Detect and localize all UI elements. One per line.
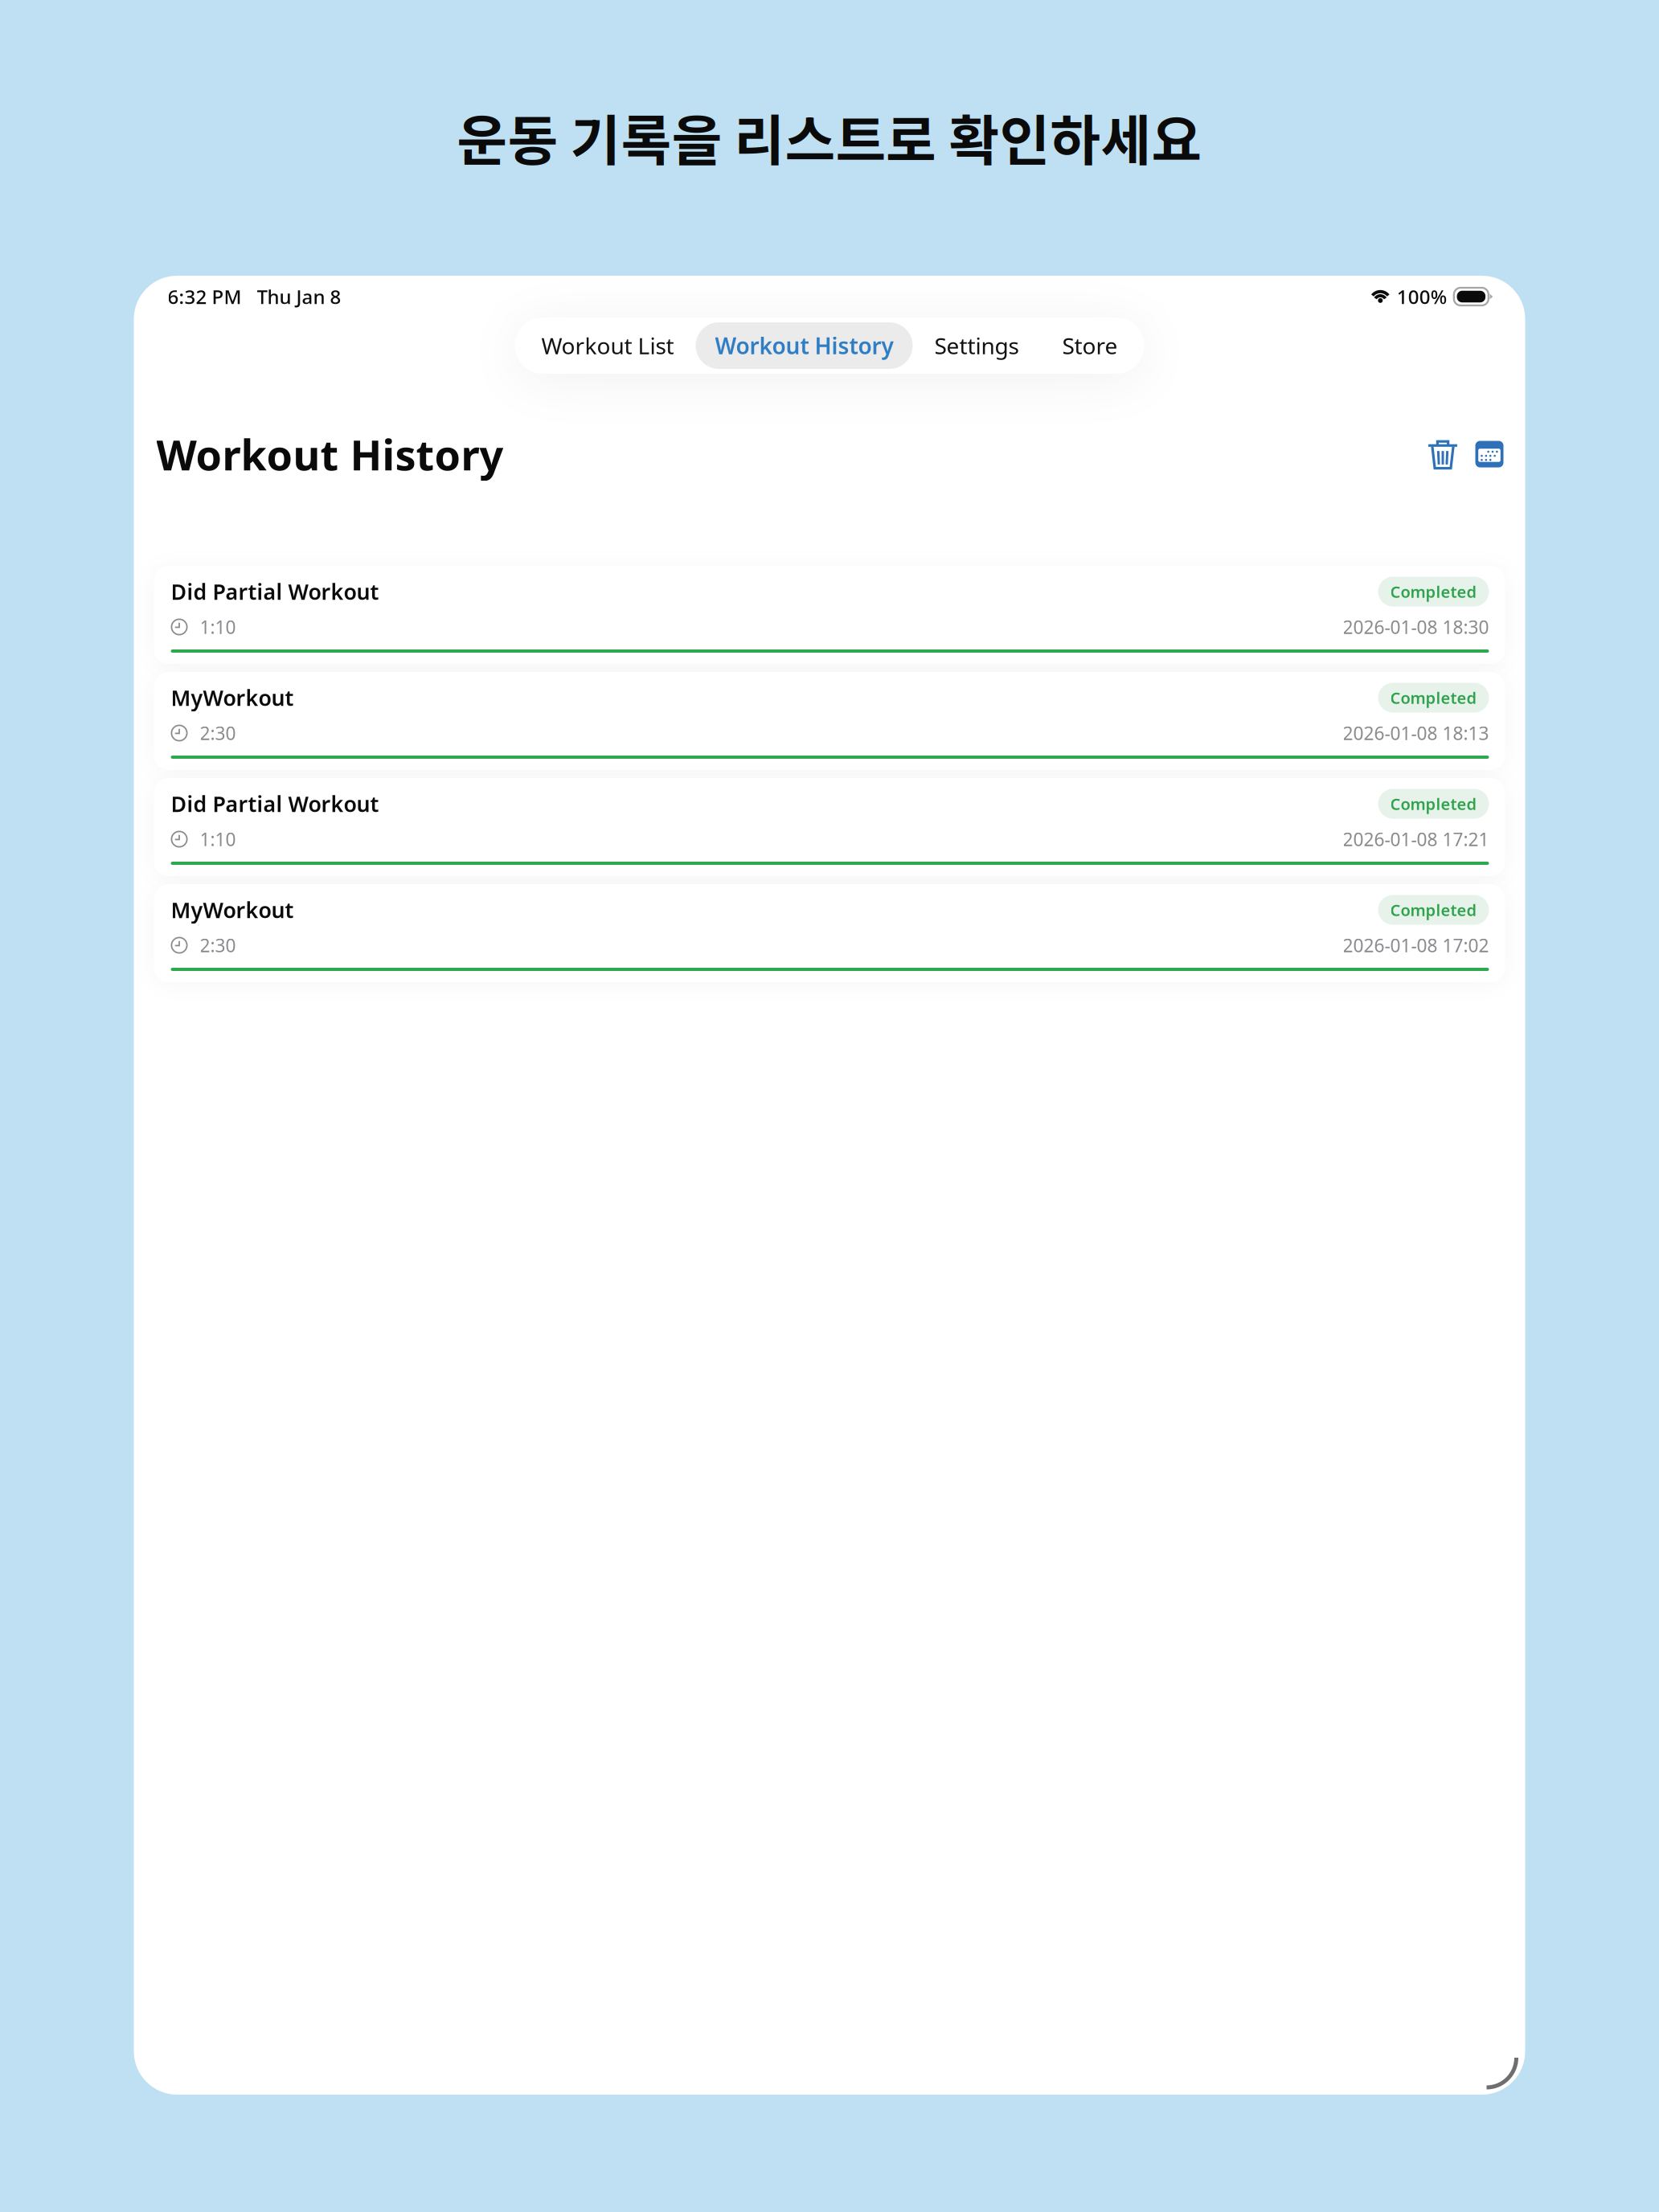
staticText: 2026-01-08 17:21 [1343, 827, 1489, 851]
staticText: 1:10 [200, 615, 236, 639]
staticText: 2026-01-08 18:30 [1343, 615, 1489, 639]
staticText: 2:30 [200, 721, 236, 745]
staticText: Completed [1390, 793, 1477, 814]
button[interactable]: MyWorkout [154, 672, 1505, 770]
button[interactable]: Settings [913, 322, 1040, 369]
staticText: Did Partial Workout [171, 790, 379, 818]
staticText: Workout History [715, 331, 893, 361]
button[interactable]: Did Partial Workout [154, 566, 1505, 664]
staticText: Completed [1390, 581, 1477, 602]
staticText: Settings [934, 331, 1019, 361]
staticText: 1:10 [200, 827, 236, 851]
staticText: Workout List [541, 331, 674, 361]
staticText: 2026-01-08 18:13 [1343, 721, 1489, 745]
button[interactable]: MyWorkout [154, 884, 1505, 982]
button[interactable]: Workout History [696, 322, 913, 369]
button[interactable]: Workout List [520, 322, 696, 369]
staticText: Workout History [156, 426, 504, 482]
staticText: Did Partial Workout [171, 577, 379, 606]
staticText: Store [1062, 331, 1118, 361]
button[interactable]: Store [1040, 322, 1139, 369]
staticText: Completed [1390, 899, 1477, 921]
staticText: MyWorkout [171, 683, 294, 712]
staticText: MyWorkout [171, 896, 294, 924]
staticText: Thu Jan 8 [257, 284, 341, 309]
button[interactable]: Filter by date [1475, 441, 1503, 467]
staticText: 100% [1397, 284, 1447, 309]
staticText: 2026-01-08 17:02 [1343, 933, 1489, 957]
staticText: 2:30 [200, 933, 236, 957]
staticText: 6:32 PM [168, 284, 242, 309]
staticText: Completed [1390, 687, 1477, 708]
button[interactable]: Did Partial Workout [154, 778, 1505, 876]
staticText: 운동 기록을 리스트로 확인하세요 [457, 97, 1202, 176]
button[interactable]: Delete all workouts [1427, 438, 1458, 470]
